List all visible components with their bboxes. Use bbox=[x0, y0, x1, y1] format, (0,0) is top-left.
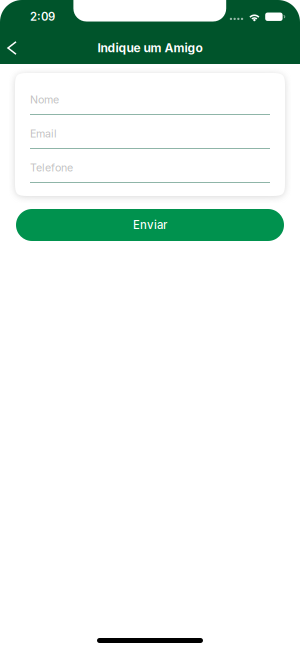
staticText: Email bbox=[30, 127, 57, 140]
staticText: 2:09 bbox=[30, 10, 55, 24]
staticText: Enviar bbox=[133, 218, 167, 232]
staticText: Telefone bbox=[30, 161, 73, 174]
staticText: Indique um Amigo bbox=[97, 41, 202, 55]
staticText: Nome bbox=[30, 93, 59, 106]
button[interactable]: Enviar bbox=[16, 209, 284, 241]
button[interactable]: Back bbox=[0, 32, 24, 64]
